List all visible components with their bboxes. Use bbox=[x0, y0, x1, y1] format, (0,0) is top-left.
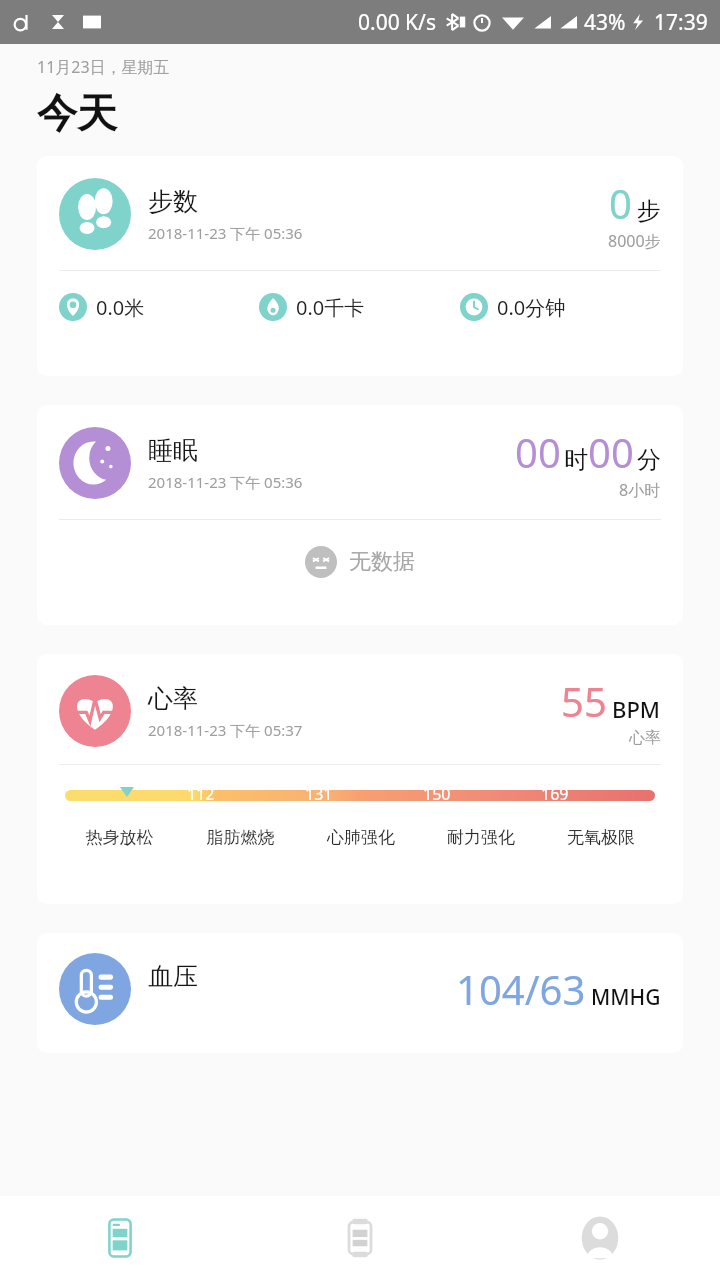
staticText: 0.0米 bbox=[96, 294, 145, 321]
staticText: 0.0分钟 bbox=[497, 294, 566, 321]
staticText: 分 bbox=[637, 445, 661, 475]
staticText: 脂肪燃烧 bbox=[180, 827, 301, 848]
staticText: 无氧极限 bbox=[541, 827, 661, 848]
staticText: 血压 bbox=[148, 961, 198, 992]
staticText: 热身放松 bbox=[59, 827, 180, 848]
staticText: 104/63 bbox=[456, 962, 586, 1016]
staticText: 2018-11-23 下午 05:37 bbox=[148, 720, 303, 740]
staticText: 17:39 bbox=[654, 8, 708, 37]
staticText: 131 bbox=[305, 783, 333, 805]
staticText: 112 bbox=[187, 783, 215, 805]
staticText: 时 bbox=[564, 445, 588, 475]
staticText: 步 bbox=[637, 196, 661, 226]
staticText: 8小时 bbox=[619, 479, 661, 501]
staticText: 睡眠 bbox=[148, 435, 198, 466]
staticText: BPM bbox=[612, 694, 661, 724]
staticText: 今天 bbox=[37, 88, 117, 138]
button[interactable]: Today bbox=[0, 1196, 240, 1280]
staticText: 00 bbox=[515, 425, 561, 479]
button[interactable]: Profile bbox=[480, 1196, 720, 1280]
staticText: 43% bbox=[584, 8, 626, 37]
staticText: 00 bbox=[588, 425, 634, 479]
staticText: MMHG bbox=[591, 983, 661, 1012]
staticText: 55 bbox=[561, 674, 607, 728]
staticText: 步数 bbox=[148, 186, 198, 217]
staticText: 0.0千卡 bbox=[296, 294, 365, 321]
staticText: 心肺强化 bbox=[301, 827, 421, 848]
staticText: 8000步 bbox=[608, 230, 661, 252]
button[interactable]: 步数 bbox=[37, 156, 683, 376]
staticText: 心率 bbox=[148, 683, 198, 714]
button[interactable]: 心率 bbox=[37, 654, 683, 904]
staticText: 耐力强化 bbox=[421, 827, 541, 848]
staticText: 11月23日，星期五 bbox=[37, 56, 170, 78]
staticText: 150 bbox=[423, 783, 451, 805]
button[interactable]: Device bbox=[240, 1196, 480, 1280]
staticText: 心率 bbox=[629, 728, 661, 748]
staticText: 2018-11-23 下午 05:36 bbox=[148, 472, 303, 492]
button[interactable]: 睡眠 bbox=[37, 405, 683, 625]
button[interactable]: 血压 bbox=[37, 933, 683, 1053]
staticText: 0 bbox=[609, 176, 632, 230]
staticText: 169 bbox=[541, 783, 569, 805]
staticText: 无数据 bbox=[349, 548, 415, 576]
staticText: 0.00 K/s bbox=[358, 8, 436, 37]
staticText: 2018-11-23 下午 05:36 bbox=[148, 223, 303, 243]
